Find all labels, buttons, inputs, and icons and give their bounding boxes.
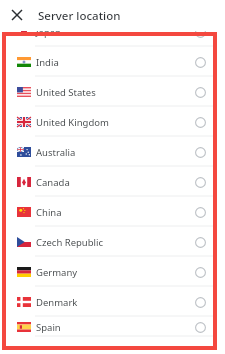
staticText: Denmark — [36, 296, 195, 309]
button[interactable]: Australia — [4, 137, 215, 167]
staticText: Australia — [36, 146, 195, 159]
staticText: Czech Republic — [36, 236, 195, 249]
button[interactable]: Denmark — [4, 287, 215, 317]
button[interactable]: United Kingdom — [4, 107, 215, 137]
staticText: Japan — [36, 31, 195, 39]
button[interactable]: Germany — [4, 257, 215, 287]
button[interactable]: India — [4, 47, 215, 77]
staticText: Server location — [38, 8, 121, 24]
staticText: Spain — [36, 321, 195, 334]
staticText: Canada — [36, 176, 195, 189]
staticText: Germany — [36, 266, 195, 279]
staticText: United Kingdom — [36, 116, 195, 129]
button[interactable]: Close — [7, 5, 27, 25]
staticText: India — [36, 56, 195, 69]
button[interactable]: Canada — [4, 167, 215, 197]
button[interactable]: United States — [4, 77, 215, 107]
staticText: United States — [36, 86, 195, 99]
staticText: China — [36, 206, 195, 219]
button[interactable]: Spain — [4, 317, 215, 337]
button[interactable]: Japan — [4, 31, 215, 47]
button[interactable]: China — [4, 197, 215, 227]
button[interactable]: Czech Republic — [4, 227, 215, 257]
